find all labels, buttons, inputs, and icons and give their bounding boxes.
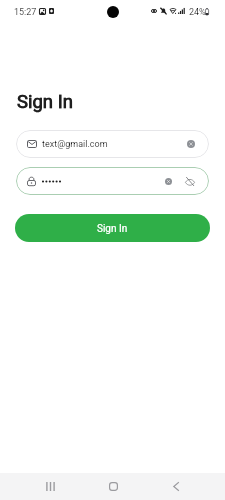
button[interactable]: Sign In — [15, 214, 210, 242]
staticText: Sign In — [97, 223, 128, 235]
button[interactable]: Clear email — [187, 140, 195, 148]
staticText: Sign In — [17, 91, 73, 113]
button[interactable]: Show password — [185, 177, 195, 186]
staticText: 24% — [189, 7, 206, 18]
staticText: Sign In — [17, 91, 73, 113]
button[interactable]: Recents — [34, 473, 66, 500]
button[interactable]: Clear password — [165, 178, 172, 185]
staticText: 15:27 — [14, 7, 37, 18]
button[interactable]: Home — [97, 473, 129, 500]
button[interactable]: Back — [160, 473, 192, 500]
button[interactable]: Clear password — [16, 167, 209, 195]
button[interactable]: text@gmail.com — [16, 130, 209, 158]
staticText: text@gmail.com — [42, 139, 108, 150]
